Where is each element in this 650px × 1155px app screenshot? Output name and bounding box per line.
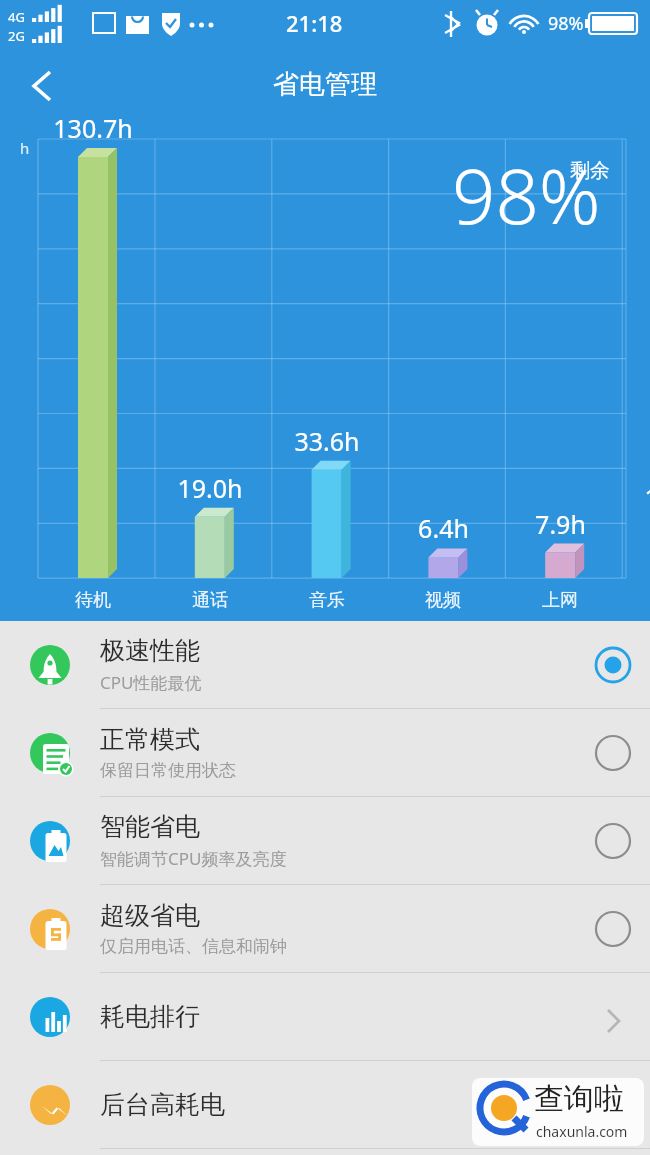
button[interactable]: 超级省电	[0, 885, 650, 972]
staticText: 7.9h	[535, 507, 586, 541]
staticText: 130.7h	[53, 111, 133, 145]
staticText: 省电管理	[273, 68, 377, 101]
staticText: 极速性能	[100, 635, 200, 666]
staticText: 超级省电	[100, 900, 200, 931]
staticText: 2G	[8, 27, 25, 45]
staticText: 剩余	[570, 158, 610, 183]
staticText: 通话	[192, 589, 228, 612]
button[interactable]: 正常模式	[0, 709, 650, 796]
button[interactable]: 极速性能	[0, 621, 650, 708]
staticText: CPU性能最优	[100, 671, 202, 694]
staticText: 保留日常使用状态	[100, 760, 236, 781]
staticText: 音乐	[309, 589, 345, 612]
staticText: 视频	[425, 589, 461, 612]
button[interactable]: 后台高耗电	[0, 1061, 650, 1148]
staticText: 4G	[8, 8, 25, 26]
staticText: 98%	[548, 11, 584, 36]
staticText: 仅启用电话、信息和闹钟	[100, 936, 287, 957]
staticText: 33.6h	[294, 424, 360, 458]
staticText: 19.0h	[177, 471, 243, 505]
staticText: chaxunla.com	[536, 1122, 628, 1141]
button[interactable]: 智能省电	[0, 797, 650, 884]
staticText: 查询啦	[534, 1080, 624, 1118]
staticText: 后台高耗电	[100, 1089, 225, 1120]
staticText: 上网	[542, 589, 578, 612]
staticText: 16.2h	[644, 480, 650, 514]
staticText: 智能调节CPU频率及亮度	[100, 847, 287, 870]
staticText: 21:18	[286, 8, 343, 38]
staticText: 正常模式	[100, 724, 200, 755]
staticText: 智能省电	[100, 811, 200, 842]
button[interactable]: 耗电排行	[0, 973, 650, 1060]
staticText: 耗电排行	[100, 1001, 200, 1032]
staticText: 98%	[452, 143, 601, 247]
button[interactable]: Back	[14, 56, 74, 116]
staticText: 待机	[75, 589, 111, 612]
staticText: 6.4h	[418, 511, 469, 545]
staticText: h	[20, 138, 30, 158]
